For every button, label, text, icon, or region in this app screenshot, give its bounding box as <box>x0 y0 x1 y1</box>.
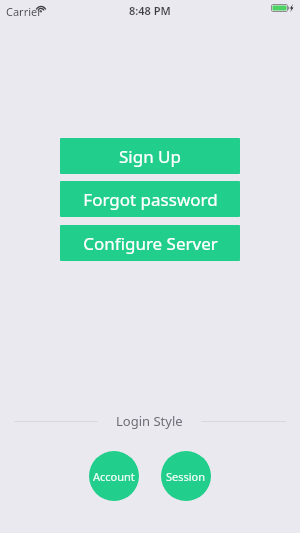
staticText: Account <box>93 469 135 484</box>
button[interactable]: Forgot password <box>60 181 240 217</box>
staticText: Forgot password <box>83 188 218 211</box>
staticText: Sign Up <box>119 145 181 168</box>
staticText: Login Style <box>116 412 183 430</box>
button[interactable]: Sign Up <box>60 138 240 174</box>
staticText: Configure Server <box>83 232 218 255</box>
staticText: 8:48 PM <box>129 3 171 18</box>
staticText: Carrier <box>6 4 42 19</box>
button[interactable]: Account <box>89 451 139 501</box>
button[interactable]: Session <box>161 451 211 501</box>
staticText: Session <box>166 469 206 484</box>
button[interactable]: Configure Server <box>60 225 240 261</box>
